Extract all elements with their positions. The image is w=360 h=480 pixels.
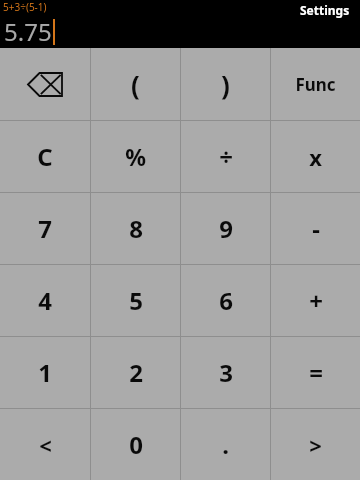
button[interactable]: 0 — [91, 409, 180, 480]
button[interactable]: Multiply — [271, 121, 360, 192]
button[interactable]: 6 — [181, 265, 270, 336]
staticText: ) — [221, 67, 230, 102]
staticText: C — [37, 140, 53, 173]
button[interactable]: 9 — [181, 193, 270, 264]
button[interactable]: 4 — [0, 265, 90, 336]
staticText: 2 — [129, 356, 143, 389]
button[interactable]: Minus — [271, 193, 360, 264]
button[interactable]: 5 — [91, 265, 180, 336]
staticText: = — [309, 356, 323, 389]
staticText: % — [125, 141, 146, 172]
staticText: 6 — [219, 284, 233, 317]
staticText: Func — [295, 73, 336, 96]
staticText: x — [309, 142, 322, 172]
staticText: 4 — [38, 284, 52, 317]
button[interactable]: Equals — [271, 337, 360, 408]
button[interactable]: Clear — [0, 121, 90, 192]
button[interactable]: Backspace — [0, 48, 90, 120]
staticText: 3 — [219, 356, 233, 389]
staticText: 1 — [38, 356, 52, 389]
staticText: 7 — [38, 212, 52, 245]
staticText: Settings — [300, 2, 350, 18]
button[interactable]: Decimal point — [181, 409, 270, 480]
staticText: > — [309, 430, 322, 460]
staticText: 5 — [129, 284, 143, 317]
staticText: < — [39, 430, 52, 460]
staticText: + — [309, 284, 323, 317]
staticText: 9 — [219, 212, 233, 245]
button[interactable]: Open parenthesis — [91, 48, 180, 120]
staticText: 5+3÷(5-1) — [3, 0, 47, 14]
button[interactable]: 7 — [0, 193, 90, 264]
staticText: 8 — [129, 212, 143, 245]
button[interactable]: Percent — [91, 121, 180, 192]
button[interactable]: Func — [271, 48, 360, 120]
button[interactable]: Move cursor right — [271, 409, 360, 480]
staticText: ÷ — [219, 140, 233, 173]
button[interactable]: 3 — [181, 337, 270, 408]
button[interactable]: Divide — [181, 121, 270, 192]
staticText: . — [222, 428, 229, 461]
button[interactable]: 1 — [0, 337, 90, 408]
button[interactable]: Plus — [271, 265, 360, 336]
button[interactable]: Move cursor left — [0, 409, 90, 480]
staticText: 0 — [129, 428, 143, 461]
button[interactable]: Settings — [290, 0, 360, 20]
staticText: - — [312, 212, 320, 245]
staticText: 5.75 — [4, 15, 52, 48]
button[interactable]: 2 — [91, 337, 180, 408]
button[interactable]: Close parenthesis — [181, 48, 270, 120]
staticText: ( — [131, 67, 140, 102]
button[interactable]: 8 — [91, 193, 180, 264]
